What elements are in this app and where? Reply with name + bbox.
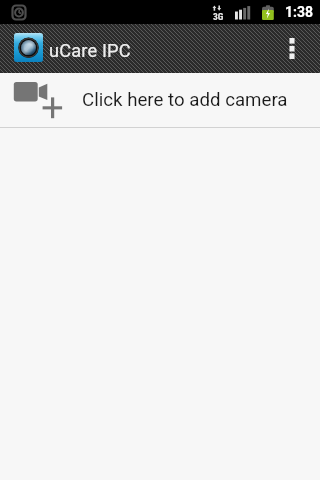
staticText: 3G	[213, 11, 224, 22]
button[interactable]: uCare IPC	[0, 24, 145, 73]
staticText: uCare IPC	[49, 40, 131, 61]
button[interactable]: Click here to add camera	[0, 73, 320, 127]
staticText: 1:38	[285, 4, 314, 20]
button[interactable]: More options	[264, 24, 320, 73]
staticText: Click here to add camera	[82, 89, 288, 111]
